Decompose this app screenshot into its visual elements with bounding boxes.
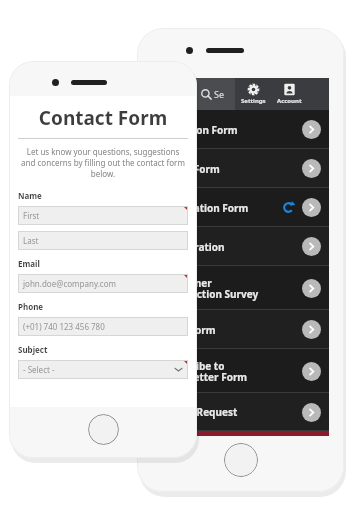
button[interactable]: Open Lead Form — [302, 320, 321, 339]
button[interactable]: Registration — [157, 227, 329, 266]
button[interactable]: Application Form — [157, 188, 329, 227]
button[interactable]: Adoption Form — [157, 110, 329, 149]
button[interactable]: Se — [191, 78, 235, 110]
button[interactable]: Open Customer Satisfaction Survey — [302, 279, 321, 298]
button[interactable]: Open Claim Form — [302, 159, 321, 178]
staticText: Email — [18, 258, 40, 269]
staticText: Phone — [18, 301, 44, 312]
button[interactable]: Quote Request — [157, 393, 329, 431]
button[interactable]: (+01) 740 123 456 780 — [18, 317, 188, 336]
button[interactable]: Open Quote Request — [302, 403, 321, 422]
button[interactable]: Lead Form — [157, 310, 329, 349]
staticText: Registration — [163, 240, 225, 254]
staticText: Name — [18, 190, 42, 201]
button[interactable]: Account — [271, 78, 307, 110]
button[interactable]: Open Subscribe to Newsletter Form — [302, 362, 321, 381]
button[interactable]: Last — [18, 231, 188, 250]
button[interactable]: Open Application Form — [302, 198, 321, 217]
staticText: Lead Form — [163, 323, 216, 337]
staticText: Let us know your questions, suggestions … — [20, 146, 186, 179]
button[interactable]: Home — [224, 443, 258, 477]
staticText: Contact Form — [18, 105, 188, 131]
button[interactable]: Open Registration — [302, 237, 321, 256]
staticText: Account — [277, 97, 302, 105]
button[interactable]: Open Adoption Form — [302, 120, 321, 139]
staticText: First — [23, 210, 40, 221]
staticText: Adoption Form — [163, 123, 238, 137]
staticText: Claim Form — [163, 162, 220, 176]
button[interactable]: First — [18, 206, 188, 225]
staticText: (+01) 740 123 456 780 — [23, 321, 105, 332]
staticText: Last — [23, 235, 39, 246]
button[interactable]: - Select - — [18, 360, 188, 379]
staticText: Subscribe to Newsletter Form — [163, 359, 248, 384]
button[interactable]: Settings — [235, 78, 271, 110]
button[interactable]: Home — [88, 414, 119, 445]
button[interactable]: john.doe@company.com — [18, 274, 188, 293]
staticText: Application Form — [163, 201, 249, 215]
staticText: Settings — [241, 97, 266, 105]
button[interactable]: Subscribe to Newsletter Form — [157, 349, 329, 393]
staticText: Se — [214, 88, 225, 100]
staticText: Customer Satisfaction Survey — [163, 276, 259, 301]
staticText: Quote Request — [163, 405, 238, 419]
staticText: - Select - — [23, 364, 55, 375]
button[interactable]: Sync — [157, 78, 191, 110]
staticText: john.doe@company.com — [23, 278, 116, 289]
staticText: Subject — [18, 344, 48, 355]
button[interactable]: Customer Satisfaction Survey — [157, 266, 329, 310]
button[interactable]: Claim Form — [157, 149, 329, 188]
